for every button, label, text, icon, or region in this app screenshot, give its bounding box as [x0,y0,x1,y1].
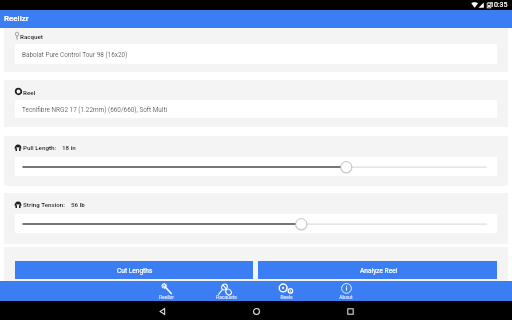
staticText: About [339,294,353,299]
button[interactable]: Recent apps [342,303,358,319]
staticText: Racquets [216,294,237,299]
staticText: Reelizr [159,294,174,299]
button[interactable]: Reelizr [0,10,512,28]
staticText: Analyze Reel [360,267,398,275]
staticText: 18 in [62,144,76,151]
button[interactable] [15,214,497,233]
button[interactable]: About [316,281,376,301]
button[interactable]: Back [154,303,170,319]
staticText: 56 lb [71,201,85,208]
staticText: String Tension: [23,201,66,208]
staticText: Pull Length: [23,144,57,151]
button[interactable]: Analyze Reel [258,261,497,279]
staticText: Reelizr [4,14,29,23]
button[interactable] [15,157,497,176]
staticText: Racquet [20,33,43,40]
staticText: Babolat Pure Control Tour 98 (16x20) [22,51,128,59]
button[interactable]: Home [248,303,264,319]
button[interactable]: Babolat Pure Control Tour 98 (16x20) [15,44,497,64]
button[interactable]: Racquets [196,281,256,301]
staticText: Reel [23,89,36,96]
staticText: Reels [280,294,293,299]
button[interactable]: Cut Lengths [15,261,253,279]
button[interactable]: Reelizr [136,281,196,301]
button[interactable]: Reels [256,281,316,301]
staticText: Tecnifibre NRG2 17 (1.22mm) (660/660), S… [22,106,168,114]
staticText: Cut Lengths [117,267,153,275]
staticText: 10:35 [490,1,508,9]
button[interactable]: Tecnifibre NRG2 17 (1.22mm) (660/660), S… [15,100,497,118]
